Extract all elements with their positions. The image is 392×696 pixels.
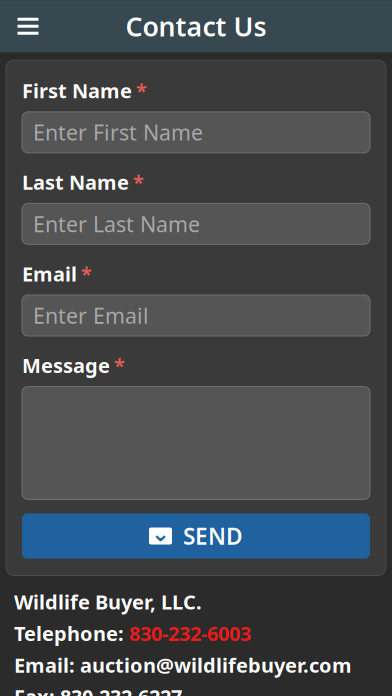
staticText: Email bbox=[22, 260, 77, 287]
staticText: * bbox=[133, 169, 144, 195]
staticText: Last Name bbox=[22, 169, 129, 195]
staticText: 830-232-6003 bbox=[129, 620, 251, 647]
staticText: Email: auction@wildlifebuyer.com bbox=[14, 652, 352, 678]
staticText: Message bbox=[22, 352, 110, 378]
staticText: SEND bbox=[183, 521, 243, 551]
staticText: Contact Us bbox=[125, 9, 266, 44]
staticText: First Name bbox=[22, 77, 132, 104]
staticText: Telephone: bbox=[14, 620, 129, 647]
button[interactable]: Enter Last Name bbox=[22, 203, 370, 244]
button[interactable]: Enter First Name bbox=[22, 112, 370, 153]
button[interactable]: Message bbox=[22, 386, 370, 499]
staticText: * bbox=[114, 352, 125, 378]
staticText: * bbox=[81, 260, 92, 287]
button[interactable]: Menu bbox=[6, 4, 50, 48]
staticText: Fax: 830-232-6227 bbox=[14, 683, 182, 696]
button[interactable]: 830-232-6003 bbox=[129, 620, 251, 647]
staticText: ⌄ bbox=[151, 521, 170, 546]
staticText: Enter Last Name bbox=[33, 210, 200, 238]
button[interactable]: ⌄ bbox=[22, 513, 370, 558]
staticText: Wildlife Buyer, LLC. bbox=[14, 588, 202, 615]
staticText: Enter First Name bbox=[33, 118, 203, 146]
staticText: Enter Email bbox=[33, 301, 149, 330]
staticText: * bbox=[136, 77, 147, 104]
button[interactable]: Enter Email bbox=[22, 295, 370, 336]
